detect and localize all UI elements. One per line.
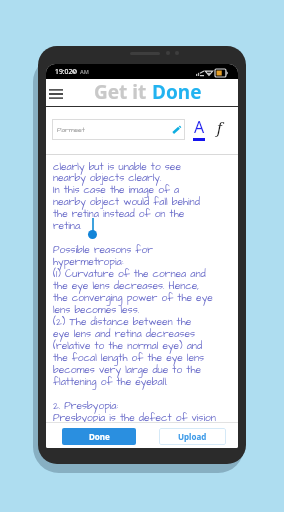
staticText: Done (89, 431, 110, 442)
button[interactable]: Font style (211, 118, 227, 138)
button[interactable]: Parmeet (52, 119, 185, 140)
button[interactable]: Menu (46, 83, 66, 104)
staticText: A (194, 116, 205, 138)
button[interactable]: Done (62, 428, 136, 445)
staticText: 19:02 (55, 67, 73, 76)
other: Edit name (172, 126, 181, 134)
staticText: Done (152, 79, 202, 105)
staticText: Get it (94, 79, 152, 105)
staticText: AM (80, 68, 89, 75)
staticText: clearly but is unable to see nearby obje… (53, 160, 216, 425)
staticText: Upload (178, 431, 207, 442)
staticText: f (217, 117, 222, 137)
button[interactable]: Upload (159, 428, 226, 445)
button[interactable]: Text colour (191, 118, 207, 142)
staticText: Parmeet (57, 125, 85, 135)
